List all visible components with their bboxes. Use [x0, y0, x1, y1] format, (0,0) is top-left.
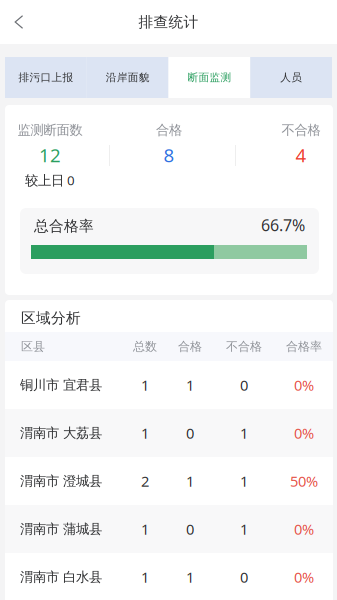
staticText: 合格: [178, 339, 202, 354]
staticText: 沿岸面貌: [106, 71, 150, 84]
staticText: 1: [141, 375, 149, 395]
button[interactable]: 渭南市 白水县: [5, 553, 333, 600]
staticText: 1: [186, 471, 194, 491]
staticText: 0%: [294, 519, 314, 539]
staticText: 排污口上报: [18, 71, 73, 84]
button[interactable]: 沿岸面貌: [87, 57, 169, 98]
staticText: 0: [240, 375, 248, 395]
staticText: 渭南市 白水县: [20, 569, 102, 585]
staticText: 渭南市 澄城县: [20, 473, 102, 489]
button[interactable]: 铜川市 宜君县: [5, 361, 333, 409]
staticText: 渭南市 大荔县: [20, 425, 102, 441]
button[interactable]: 渭南市 大荔县: [5, 409, 333, 457]
staticText: 排查统计: [138, 13, 198, 31]
staticText: 8: [163, 143, 174, 167]
staticText: 区域分析: [21, 309, 81, 327]
button[interactable]: 返回: [0, 0, 38, 44]
staticText: 渭南市 蒲城县: [20, 521, 102, 537]
staticText: 4: [295, 143, 306, 167]
staticText: 0: [186, 423, 194, 443]
staticText: 不合格: [226, 339, 262, 354]
staticText: 监测断面数: [17, 122, 82, 138]
staticText: 区县: [21, 339, 45, 354]
staticText: 1: [141, 567, 149, 587]
staticText: 总合格率: [34, 217, 94, 235]
staticText: 1: [186, 567, 194, 587]
staticText: 合格率: [286, 339, 322, 354]
button[interactable]: 排污口上报: [5, 57, 87, 98]
staticText: 1: [141, 519, 149, 539]
staticText: 50%: [290, 471, 318, 491]
staticText: 0: [240, 567, 248, 587]
staticText: 断面监测: [187, 71, 231, 84]
staticText: 1: [141, 423, 149, 443]
staticText: 较上日 0: [25, 171, 75, 189]
staticText: 1: [186, 375, 194, 395]
staticText: 合格: [156, 122, 182, 138]
staticText: 不合格: [281, 122, 320, 138]
button[interactable]: 渭南市 澄城县: [5, 457, 333, 505]
staticText: 1: [240, 471, 248, 491]
staticText: 0%: [294, 423, 314, 443]
staticText: 0: [186, 519, 194, 539]
staticText: 2: [141, 471, 149, 491]
staticText: 1: [240, 423, 248, 443]
staticText: 铜川市 宜君县: [20, 377, 102, 393]
button[interactable]: 断面监测: [168, 57, 250, 98]
staticText: 人员: [280, 71, 302, 84]
staticText: 1: [240, 519, 248, 539]
staticText: 0%: [294, 567, 314, 587]
staticText: 总数: [133, 339, 157, 354]
staticText: 0%: [294, 375, 314, 395]
button[interactable]: 人员: [250, 57, 332, 98]
button[interactable]: 渭南市 蒲城县: [5, 505, 333, 553]
staticText: 12: [39, 143, 61, 167]
staticText: 66.7%: [261, 214, 305, 236]
